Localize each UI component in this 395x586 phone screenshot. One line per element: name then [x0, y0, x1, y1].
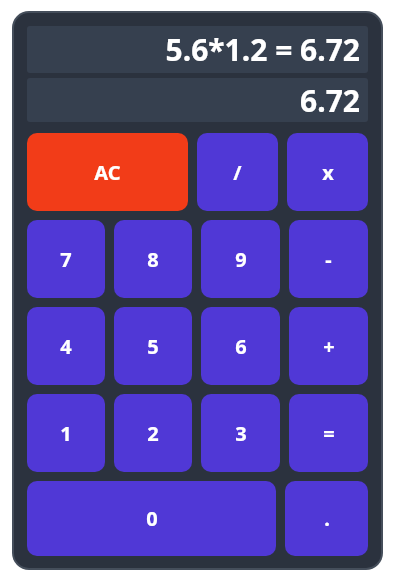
button[interactable]: / [197, 133, 278, 211]
staticText: AC [94, 159, 121, 186]
button[interactable]: 4 [27, 307, 105, 385]
button[interactable]: 6 [201, 307, 280, 385]
staticText: 9 [235, 246, 247, 273]
staticText: - [325, 246, 332, 273]
staticText: 2 [147, 420, 159, 447]
staticText: 5 [147, 333, 159, 360]
staticText: 7 [60, 246, 72, 273]
button[interactable]: 7 [27, 220, 105, 298]
staticText: = [323, 420, 335, 447]
button[interactable]: AC [27, 133, 188, 211]
button[interactable]: . [285, 481, 368, 556]
button[interactable]: x [287, 133, 368, 211]
staticText: 8 [147, 246, 159, 273]
button[interactable]: 1 [27, 394, 105, 472]
button[interactable]: 2 [114, 394, 192, 472]
staticText: + [323, 333, 335, 360]
button[interactable]: 5 [114, 307, 192, 385]
staticText: 5.6*1.2 = 6.72 [165, 29, 360, 70]
button[interactable]: 3 [201, 394, 280, 472]
button[interactable]: 9 [201, 220, 280, 298]
staticText: x [322, 159, 334, 186]
staticText: 1 [60, 420, 72, 447]
button[interactable]: - [289, 220, 368, 298]
staticText: . [324, 505, 330, 532]
button[interactable]: 8 [114, 220, 192, 298]
button[interactable]: = [289, 394, 368, 472]
staticText: 4 [60, 333, 72, 360]
staticText: 0 [146, 505, 158, 532]
button[interactable]: + [289, 307, 368, 385]
button[interactable]: 0 [27, 481, 276, 556]
staticText: / [233, 159, 242, 186]
staticText: 6.72 [300, 80, 360, 121]
staticText: 3 [235, 420, 247, 447]
staticText: 6 [235, 333, 247, 360]
